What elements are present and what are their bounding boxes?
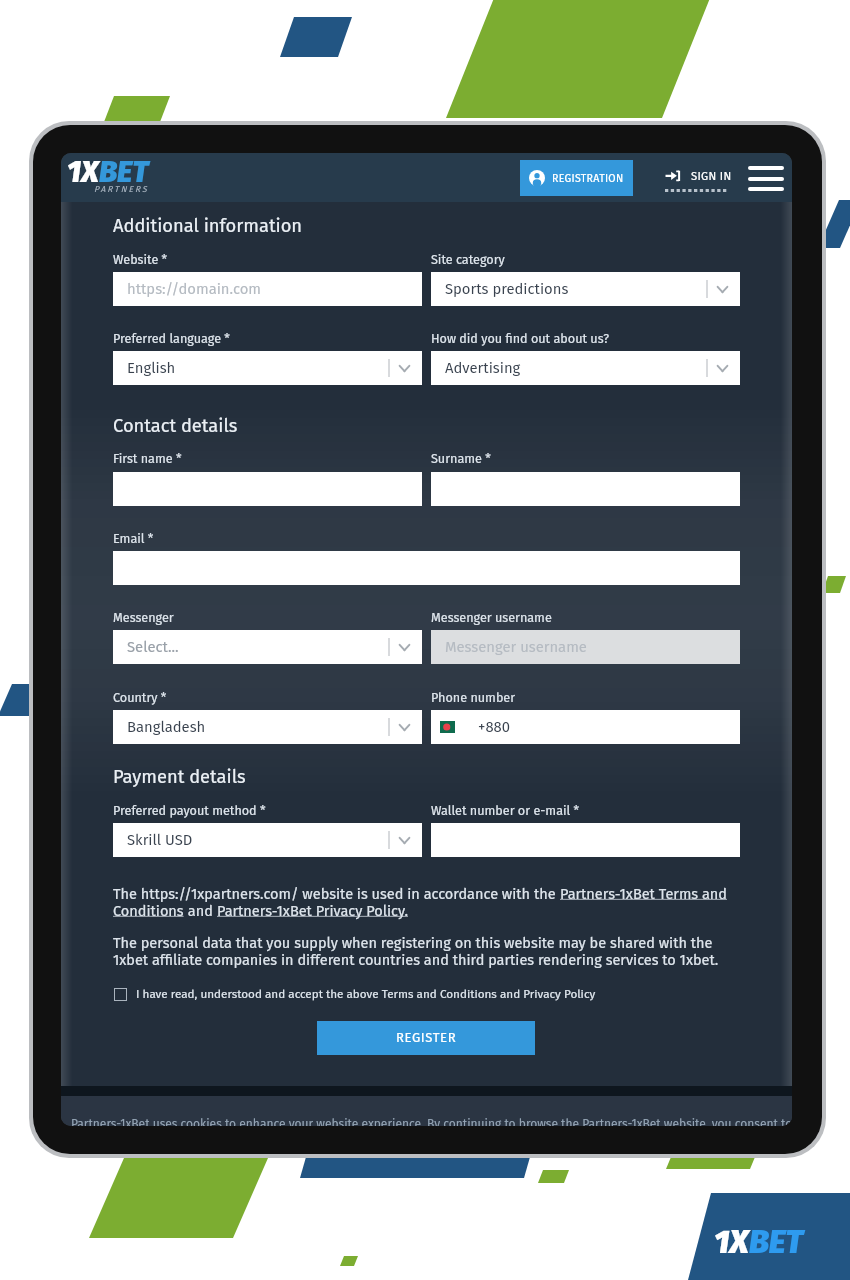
staticText: Additional information bbox=[113, 215, 303, 237]
button[interactable]: English bbox=[113, 351, 422, 385]
button[interactable]: Partners-1xBet Privacy Policy. bbox=[217, 902, 408, 919]
button[interactable]: Advertising bbox=[431, 351, 740, 385]
button[interactable]: Partners-1xBet Terms and bbox=[560, 885, 727, 902]
staticText: https://domain.com bbox=[127, 280, 262, 298]
staticText: Phone number bbox=[431, 690, 516, 705]
staticText: Select... bbox=[127, 638, 179, 656]
staticText: Messenger username bbox=[445, 638, 587, 656]
staticText: 1X bbox=[67, 154, 99, 190]
staticText: REGISTRATION bbox=[552, 172, 624, 185]
staticText: REGISTER bbox=[396, 1030, 457, 1046]
staticText: and bbox=[184, 902, 217, 919]
staticText: Messenger username bbox=[431, 610, 552, 625]
button[interactable]: Menu bbox=[748, 166, 784, 191]
staticText: Partners-1xBet uses cookies to enhance y… bbox=[71, 1117, 792, 1126]
staticText: Preferred payout method * bbox=[113, 803, 266, 818]
staticText: Contact details bbox=[113, 415, 238, 437]
staticText: Skrill USD bbox=[127, 831, 193, 849]
button[interactable]: Skrill USD bbox=[113, 823, 422, 857]
staticText: Site category bbox=[431, 252, 505, 267]
staticText: 1X bbox=[714, 1222, 749, 1262]
button[interactable]: Sports predictions bbox=[431, 272, 740, 306]
staticText: +880 bbox=[478, 718, 510, 736]
staticText: BET bbox=[749, 1222, 803, 1262]
staticText: PARTNERS bbox=[94, 184, 149, 194]
staticText: SIGN IN bbox=[691, 169, 732, 183]
staticText: First name * bbox=[113, 451, 182, 466]
staticText: Preferred language * bbox=[113, 331, 230, 346]
staticText: English bbox=[127, 359, 176, 377]
staticText: How did you find out about us? bbox=[431, 331, 609, 346]
staticText: Sports predictions bbox=[445, 280, 569, 298]
staticText: 1xbet affiliate companies in different c… bbox=[113, 951, 719, 968]
staticText: Messenger bbox=[113, 610, 174, 625]
button[interactable]: Select... bbox=[113, 630, 422, 664]
staticText: The personal data that you supply when r… bbox=[113, 934, 713, 951]
staticText: Country * bbox=[113, 690, 167, 705]
button[interactable]: SIGN IN bbox=[665, 164, 732, 188]
staticText: Wallet number or e-mail * bbox=[431, 803, 580, 818]
button[interactable]: REGISTRATION bbox=[520, 160, 633, 196]
button[interactable]: https://domain.com bbox=[113, 272, 422, 306]
staticText: Advertising bbox=[445, 359, 521, 377]
button[interactable]: REGISTER bbox=[317, 1021, 535, 1055]
button[interactable]: I have read, understood and accept the a… bbox=[114, 987, 596, 1001]
button[interactable]: Conditions bbox=[113, 902, 184, 919]
button[interactable]: Bangladesh bbox=[113, 710, 422, 744]
staticText: Website * bbox=[113, 252, 168, 267]
button[interactable]: +880 bbox=[431, 710, 740, 744]
staticText: I have read, understood and accept the a… bbox=[136, 987, 596, 1001]
button[interactable]: Messenger username bbox=[431, 630, 740, 664]
staticText: Email * bbox=[113, 531, 154, 546]
staticText: The https://1xpartners.com/ website is u… bbox=[113, 885, 560, 902]
staticText: Surname * bbox=[431, 451, 491, 466]
staticText: BET bbox=[99, 154, 149, 190]
staticText: Payment details bbox=[113, 766, 246, 788]
staticText: Bangladesh bbox=[127, 718, 206, 736]
